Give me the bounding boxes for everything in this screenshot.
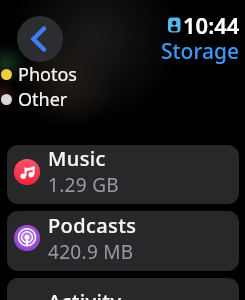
button[interactable]: Other — [1, 87, 68, 112]
staticText: Music — [48, 145, 106, 172]
staticText: Storage — [161, 37, 239, 66]
staticText: Podcasts — [48, 212, 137, 239]
button[interactable] — [17, 16, 63, 62]
staticText: Activity — [48, 288, 122, 300]
staticText: 1.29 GB — [48, 172, 119, 198]
staticText: 420.9 MB — [48, 239, 134, 265]
staticText: Other — [18, 87, 68, 112]
button[interactable]: Photos — [1, 62, 77, 87]
button[interactable]: Activity — [7, 278, 239, 300]
button[interactable]: Podcasts — [7, 211, 239, 271]
staticText: 10:44 — [183, 10, 240, 40]
button[interactable]: Music — [7, 145, 239, 204]
staticText: Photos — [18, 62, 77, 87]
